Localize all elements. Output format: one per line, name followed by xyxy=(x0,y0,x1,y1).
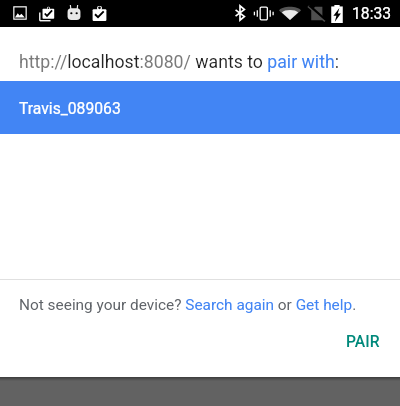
staticText: http://localhost:8080/ wants to pair wit… xyxy=(19,52,339,73)
staticText: Travis_089063 xyxy=(19,99,121,117)
staticText: PAIR xyxy=(346,332,380,350)
button[interactable]: Travis_089063 xyxy=(0,81,400,134)
staticText: 18:33 xyxy=(352,4,392,22)
button[interactable]: PAIR xyxy=(330,324,396,358)
staticText: Not seeing your device? Search again or … xyxy=(19,296,357,314)
